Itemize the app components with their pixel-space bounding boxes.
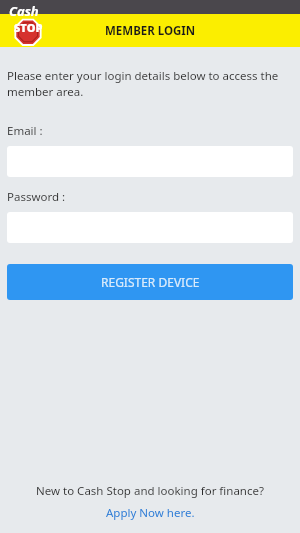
staticText: Please enter your login details below to… [7, 68, 293, 99]
button[interactable]: Apply Now here. [106, 505, 195, 521]
staticText: Cash [9, 2, 39, 20]
staticText: Password : [7, 189, 66, 205]
staticText: MEMBER LOGIN [105, 23, 196, 39]
button[interactable]: Cash Stop logo [7, 1, 49, 47]
staticText: Apply Now here. [106, 505, 195, 521]
staticText: REGISTER DEVICE [101, 274, 200, 290]
staticText: New to Cash Stop and looking for finance… [36, 483, 264, 499]
staticText: STOP [14, 20, 43, 35]
button[interactable]: REGISTER DEVICE [7, 264, 293, 300]
staticText: Email : [7, 123, 43, 139]
